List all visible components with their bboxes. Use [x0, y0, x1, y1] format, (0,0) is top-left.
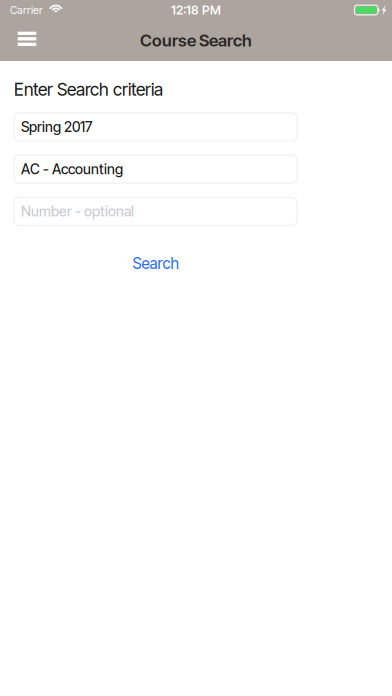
- staticText: Number - optional: [21, 203, 134, 220]
- staticText: Search: [132, 254, 178, 273]
- button[interactable]: Spring 2017: [14, 113, 297, 141]
- staticText: Carrier: [10, 3, 43, 16]
- staticText: Enter Search criteria: [14, 79, 163, 100]
- staticText: 12:18 PM: [171, 2, 221, 17]
- staticText: AC - Accounting: [21, 161, 123, 178]
- staticText: Course Search: [140, 30, 252, 51]
- staticText: Spring 2017: [21, 118, 92, 135]
- button[interactable]: AC - Accounting: [14, 155, 297, 183]
- button[interactable]: Search: [14, 250, 297, 276]
- button[interactable]: Menu: [5, 18, 49, 59]
- button[interactable]: Number - optional: [14, 197, 297, 225]
